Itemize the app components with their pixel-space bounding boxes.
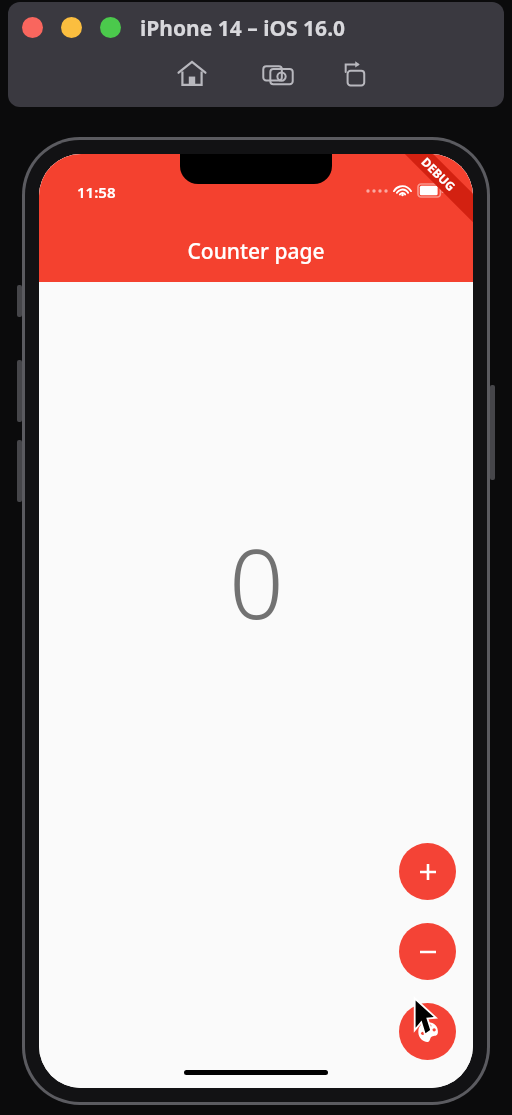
button[interactable]: Increment bbox=[399, 843, 456, 900]
button[interactable]: Change color bbox=[399, 1003, 456, 1060]
staticText: 0 bbox=[229, 516, 284, 647]
button[interactable]: Screenshot bbox=[262, 58, 294, 90]
staticText: iPhone 14 – iOS 16.0 bbox=[140, 14, 346, 43]
button[interactable]: Window control bbox=[100, 17, 121, 38]
button[interactable]: Decrement bbox=[399, 923, 456, 980]
button[interactable]: Window control bbox=[22, 17, 43, 38]
button[interactable]: Home bbox=[176, 58, 208, 90]
button[interactable]: Rotate bbox=[338, 58, 370, 90]
staticText: Counter page bbox=[187, 237, 325, 266]
staticText: DEBUG bbox=[418, 154, 459, 194]
button[interactable]: Window control bbox=[61, 17, 82, 38]
staticText: 11:58 bbox=[77, 182, 116, 202]
